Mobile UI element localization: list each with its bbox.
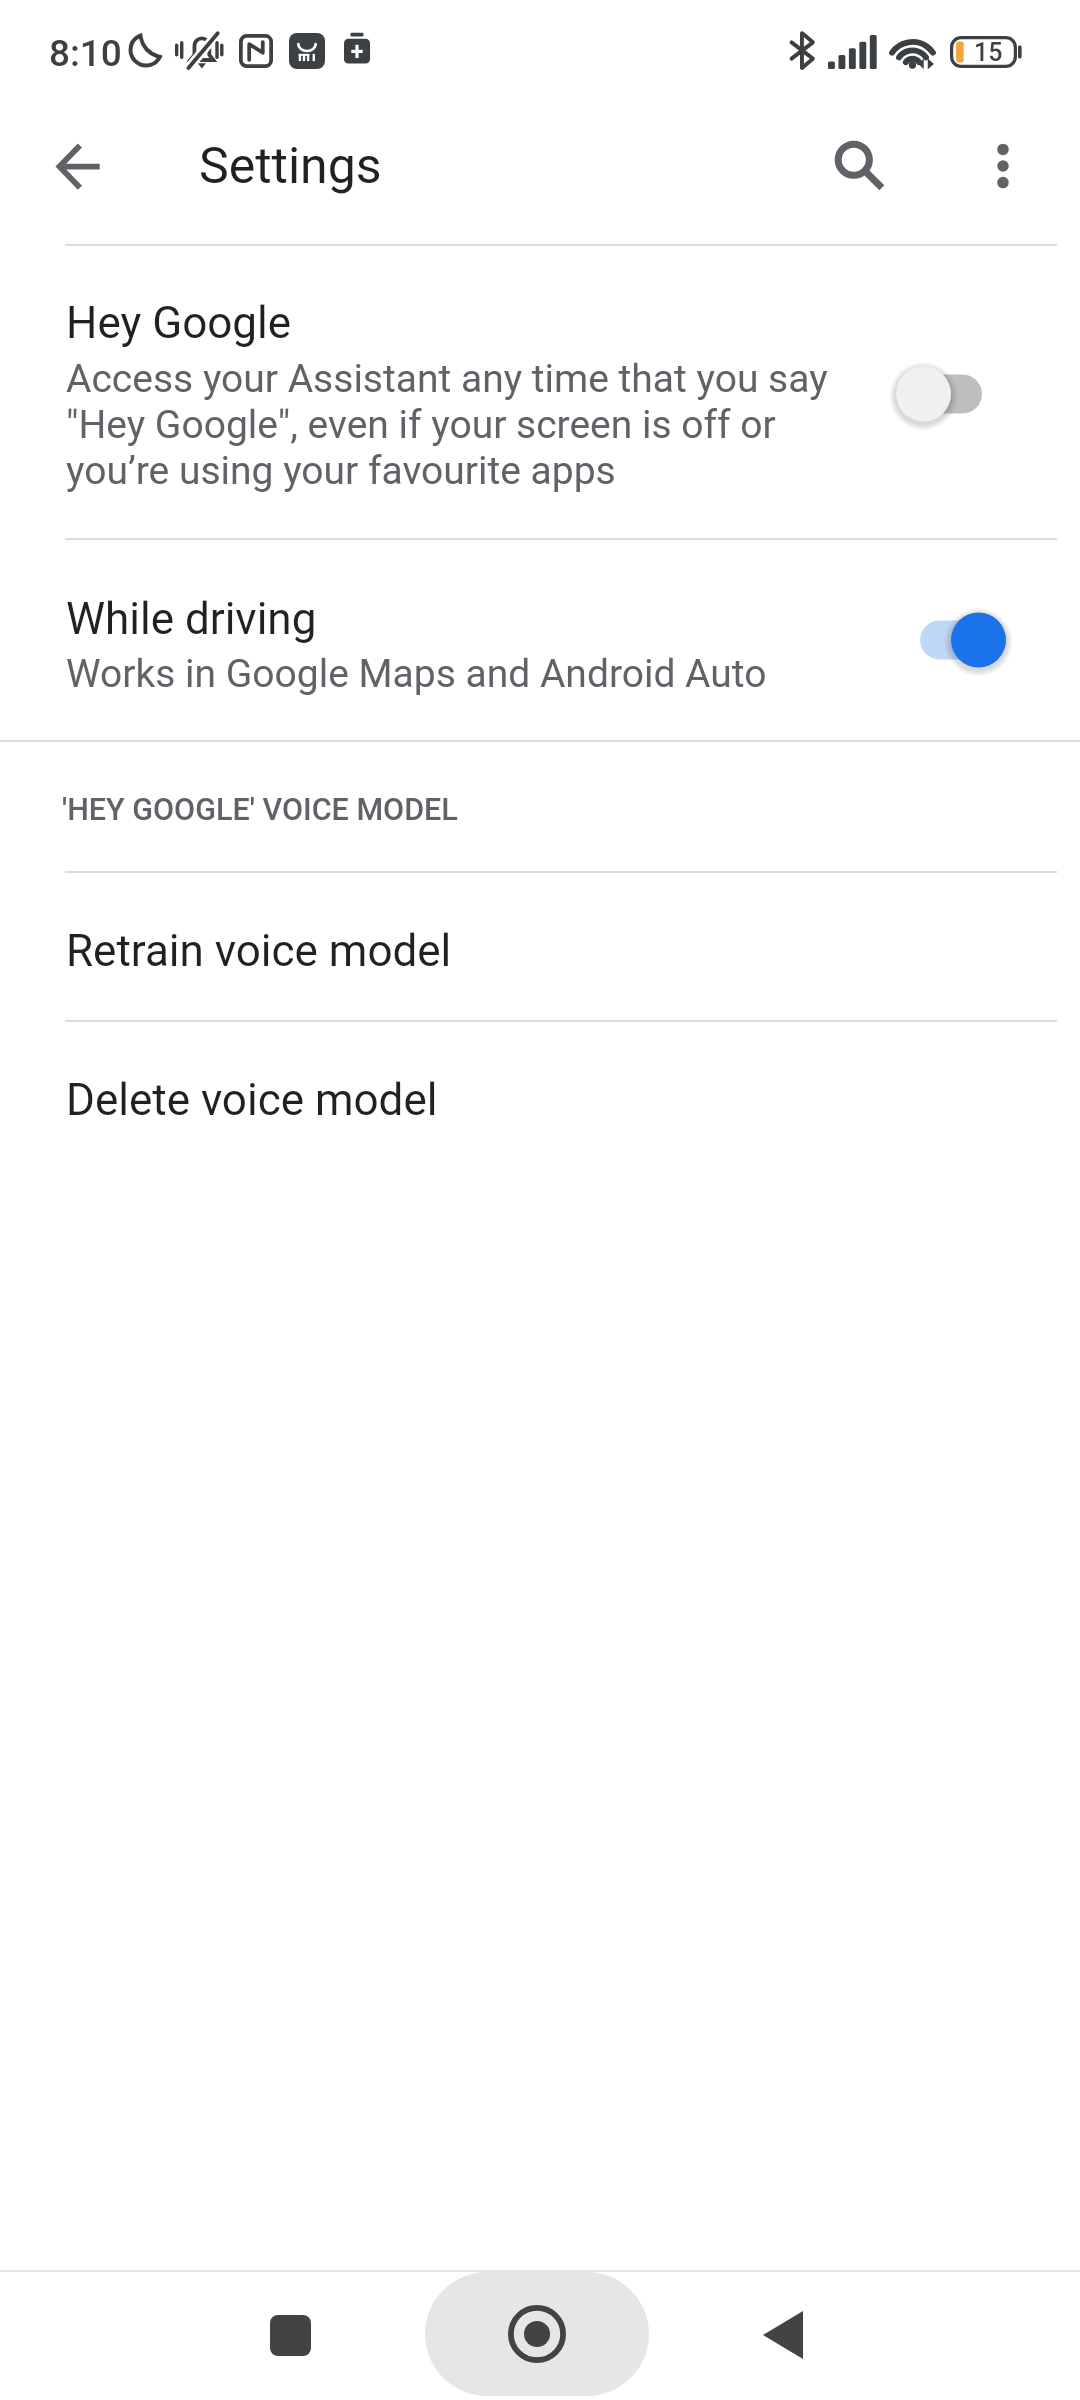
button[interactable]: Home xyxy=(425,2272,649,2396)
button[interactable]: More options xyxy=(957,120,1049,212)
button[interactable]: Hey Google xyxy=(0,246,1080,538)
button[interactable]: Delete voice model xyxy=(0,1022,1080,1169)
staticText: Retrain voice model xyxy=(66,925,452,977)
staticText: Delete voice model xyxy=(66,1074,438,1126)
staticText: Access your Assistant any time that you … xyxy=(66,356,866,494)
staticText: Hey Google xyxy=(66,297,292,349)
staticText: Settings xyxy=(199,137,382,196)
button[interactable]: Search xyxy=(814,120,906,212)
button[interactable]: Navigate up xyxy=(33,122,125,214)
staticText: 8:10 xyxy=(49,32,122,75)
button[interactable]: Recent apps xyxy=(180,2275,400,2395)
button[interactable]: Off xyxy=(886,364,1038,424)
staticText: 15 xyxy=(974,38,1003,67)
button[interactable]: On xyxy=(910,610,1062,670)
button[interactable]: Retrain voice model xyxy=(0,873,1080,1020)
button[interactable]: Back xyxy=(673,2275,893,2395)
button[interactable]: While driving xyxy=(0,540,1080,740)
staticText: While driving xyxy=(66,593,317,645)
staticText: 'HEY GOOGLE' VOICE MODEL xyxy=(62,792,458,828)
staticText: Works in Google Maps and Android Auto xyxy=(66,651,767,697)
